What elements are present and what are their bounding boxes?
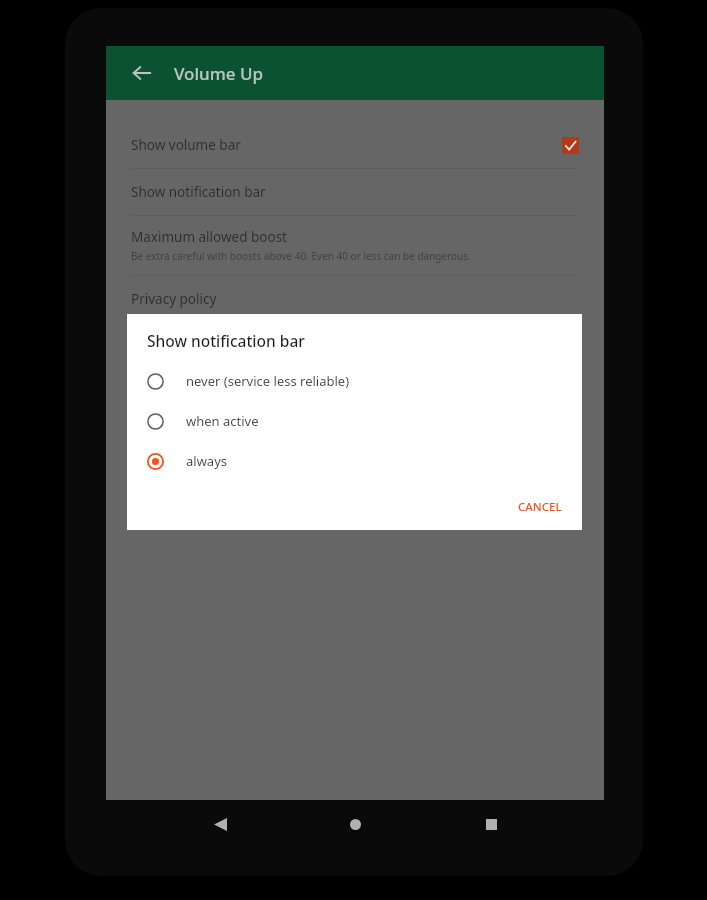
staticText: Volume Up [174,62,264,85]
button[interactable]: always [127,441,582,481]
staticText: Show notification bar [147,330,305,351]
staticText: Maximum allowed boost [131,228,287,246]
staticText: CANCEL [518,499,562,515]
staticText: always [186,452,228,470]
button[interactable]: Privacy policy [106,276,604,322]
staticText: Be extra careful with boosts above 40. E… [131,249,471,263]
staticText: Privacy policy [131,290,217,308]
button[interactable]: Maximum allowed boost [106,216,604,275]
staticText: Show notification bar [131,183,266,201]
staticText: never (service less reliable) [186,372,350,390]
button[interactable]: Home [333,802,377,846]
button[interactable]: Back [120,51,164,95]
button[interactable]: Recent apps [469,802,513,846]
button[interactable]: Back [198,802,242,846]
button[interactable]: CANCEL [508,492,572,522]
staticText: Show volume bar [131,136,562,154]
button[interactable]: when active [127,401,582,441]
button[interactable]: never (service less reliable) [127,361,582,401]
button[interactable]: Show notification bar [106,169,604,215]
staticText: when active [186,412,259,430]
button[interactable]: Show volume bar [106,122,604,168]
